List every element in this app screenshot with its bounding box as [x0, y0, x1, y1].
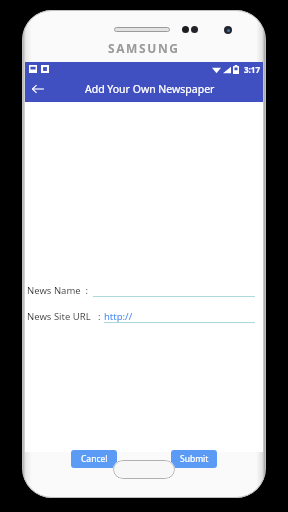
button[interactable] — [93, 280, 255, 300]
staticText: Cancel — [81, 453, 108, 465]
button[interactable]: Cancel — [71, 450, 117, 468]
staticText: Submit — [180, 453, 209, 465]
button[interactable]: http:// — [104, 306, 255, 326]
staticText: News Name : — [27, 284, 89, 297]
staticText: http:// — [104, 310, 133, 323]
staticText: SAMSUNG — [108, 40, 180, 56]
staticText: News Site URL : — [27, 310, 101, 323]
staticText: 3:17 — [244, 64, 260, 75]
button[interactable]: Submit — [171, 450, 217, 468]
staticText: Add Your Own Newspaper — [85, 82, 215, 96]
button[interactable]: Back — [25, 76, 51, 102]
